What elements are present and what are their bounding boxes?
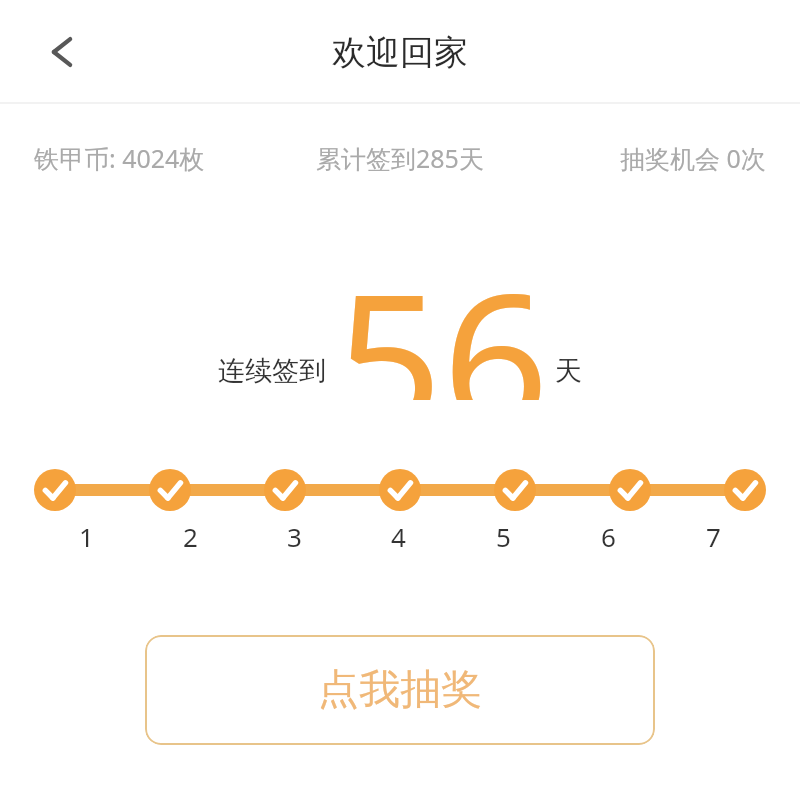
staticText: 欢迎回家 — [332, 31, 468, 74]
staticText: 铁甲币: 4024枚 — [34, 141, 205, 175]
staticText: 5 — [496, 519, 511, 554]
staticText: 天 — [555, 354, 582, 388]
staticText: 点我抽奖 — [318, 664, 482, 716]
staticText: 连续签到 — [218, 354, 326, 388]
button[interactable]: 抽奖机会 0次 — [533, 134, 800, 182]
staticText: 6 — [601, 519, 616, 554]
staticText: 56 — [336, 230, 549, 400]
staticText: 1 — [79, 519, 94, 554]
button[interactable]: 铁甲币: 4024枚 — [0, 134, 266, 182]
button[interactable]: Back — [26, 16, 98, 88]
staticText: 2 — [183, 519, 198, 554]
staticText: 7 — [706, 519, 721, 554]
staticText: 累计签到285天 — [316, 141, 484, 175]
staticText: 抽奖机会 0次 — [620, 141, 766, 175]
staticText: 3 — [287, 519, 302, 554]
staticText: 4 — [391, 519, 406, 554]
button[interactable]: 累计签到285天 — [266, 134, 533, 182]
button[interactable]: 点我抽奖 — [145, 635, 655, 745]
